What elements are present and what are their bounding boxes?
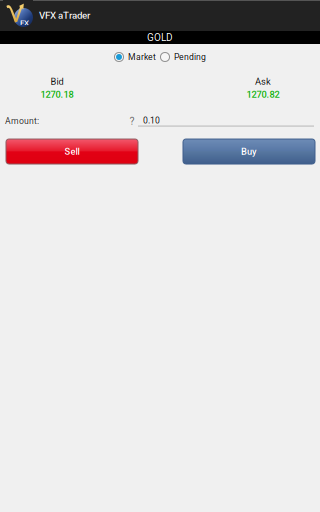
- staticText: FX: [20, 18, 29, 27]
- staticText: Sell: [64, 146, 79, 157]
- staticText: Buy: [241, 146, 257, 157]
- button[interactable]: Sell: [6, 139, 138, 164]
- staticText: Bid: [50, 76, 63, 87]
- staticText: Pending: [174, 52, 206, 62]
- staticText: Ask: [255, 76, 271, 87]
- button[interactable]: Help: [126, 114, 138, 128]
- staticText: GOLD: [147, 32, 173, 43]
- staticText: Market: [128, 52, 156, 62]
- button[interactable]: Pending: [160, 50, 206, 64]
- staticText: 1270.82: [246, 89, 279, 100]
- button[interactable]: Buy: [183, 139, 315, 164]
- button[interactable]: Market: [114, 50, 156, 64]
- staticText: 1270.18: [40, 89, 73, 100]
- staticText: VFX aTrader: [39, 10, 90, 21]
- staticText: ?: [129, 115, 134, 127]
- staticText: 0.10: [143, 115, 160, 126]
- staticText: Amount:: [5, 116, 39, 126]
